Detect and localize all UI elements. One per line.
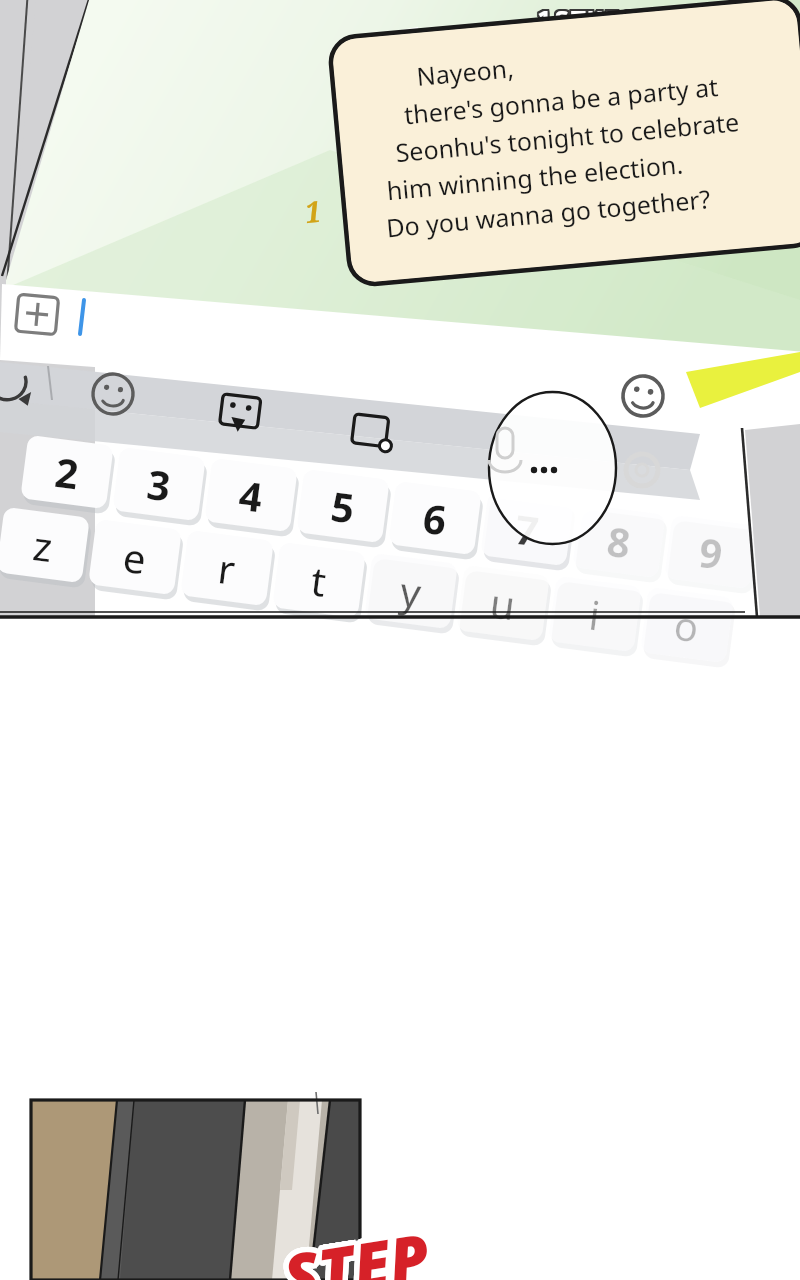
button[interactable]: Webtoon page	[0, 0, 800, 1280]
